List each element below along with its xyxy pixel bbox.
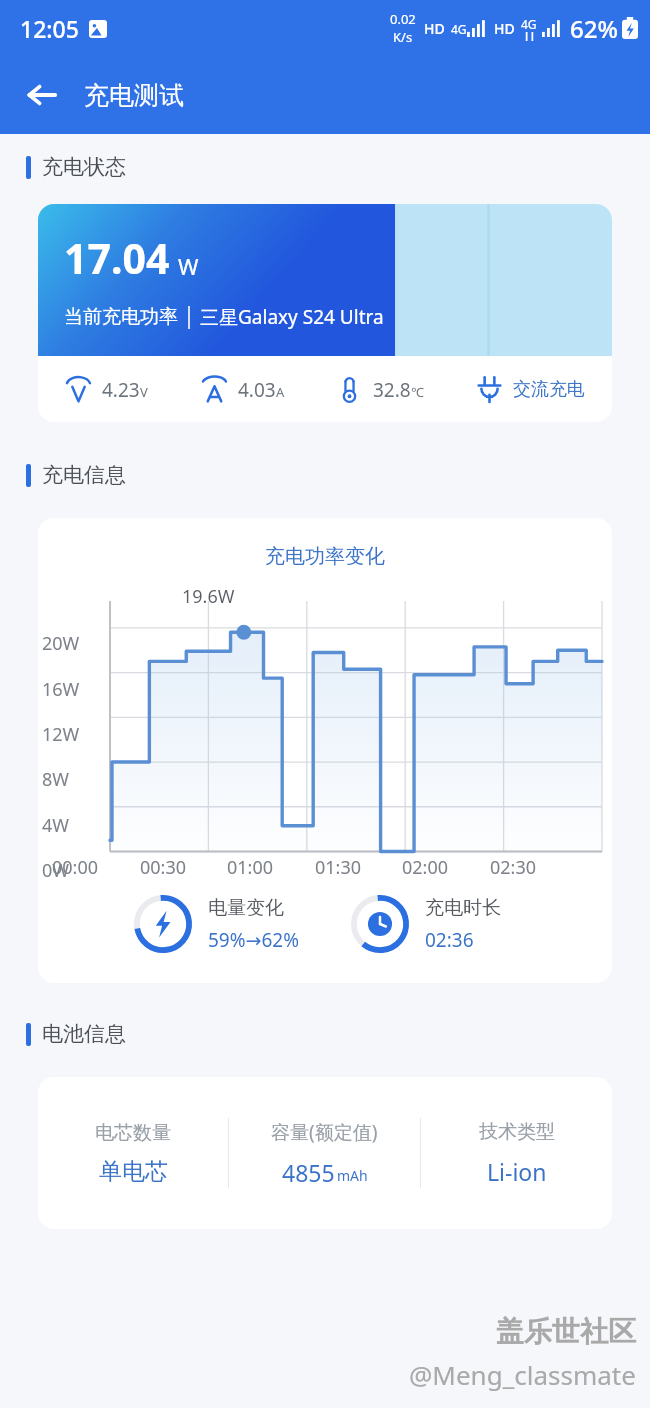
staticText: 00:00 [52, 855, 99, 880]
staticText: mAh [337, 1166, 368, 1185]
staticText: 4.03 [238, 377, 276, 403]
staticText: 0.02 [390, 10, 416, 28]
button[interactable]: 充电时长 [351, 895, 501, 953]
staticText: 充电测试 [84, 80, 184, 111]
staticText: 20W [42, 631, 80, 656]
staticText: 01:00 [227, 855, 274, 880]
staticText: 0W [42, 858, 70, 883]
staticText: 交流充电 [513, 378, 585, 401]
staticText: K/s [393, 28, 413, 46]
staticText: @Meng_classmate [409, 1357, 636, 1392]
staticText: 00:30 [140, 855, 187, 880]
staticText: 盖乐世社区 [496, 1314, 636, 1349]
staticText: 充电信息 [42, 462, 126, 488]
staticText: V [140, 383, 148, 401]
button[interactable]: 电芯数量 [38, 1077, 612, 1229]
staticText: 电芯数量 [95, 1121, 171, 1145]
staticText: W [178, 251, 199, 281]
staticText: HD [494, 19, 515, 38]
staticText: 02:00 [402, 855, 449, 880]
staticText: 12W [42, 722, 80, 747]
staticText: 4G [451, 21, 467, 37]
staticText: 12:05 [20, 13, 79, 44]
staticText: 02:36 [425, 927, 474, 953]
staticText: ℃ [411, 383, 424, 401]
staticText: 电量变化 [208, 896, 284, 920]
button[interactable]: Back [14, 67, 70, 123]
staticText: 8W [42, 767, 70, 792]
staticText: 16W [42, 677, 80, 702]
staticText: Li-ion [487, 1156, 547, 1187]
staticText: 当前充电功率 [64, 305, 178, 329]
staticText: 62% [570, 12, 618, 45]
staticText: A [276, 383, 285, 401]
staticText: 三星Galaxy S24 Ultra [200, 304, 384, 330]
staticText: 容量(额定值) [271, 1119, 378, 1145]
staticText: 4855 [282, 1157, 335, 1188]
staticText: 电池信息 [42, 1021, 126, 1047]
staticText: 4.23 [102, 377, 140, 403]
staticText: 32.8 [373, 377, 411, 403]
staticText: 技术类型 [479, 1120, 555, 1144]
staticText: 17.04 [64, 230, 170, 286]
staticText: 02:30 [490, 855, 537, 880]
staticText: 充电时长 [425, 896, 501, 920]
staticText: 充电功率变化 [38, 544, 612, 569]
staticText: 单电芯 [99, 1157, 168, 1186]
staticText: 01:30 [315, 855, 362, 880]
staticText: 4G [521, 16, 537, 32]
staticText: 4W [42, 813, 70, 838]
staticText: 59%→62% [208, 927, 299, 953]
staticText: HD [424, 19, 445, 38]
staticText: 19.6W [182, 584, 235, 609]
staticText: 充电状态 [42, 154, 126, 180]
button[interactable]: 充电功率变化 [38, 518, 612, 983]
button[interactable]: 17.04 [38, 204, 612, 422]
button[interactable]: 电量变化 [134, 895, 299, 953]
